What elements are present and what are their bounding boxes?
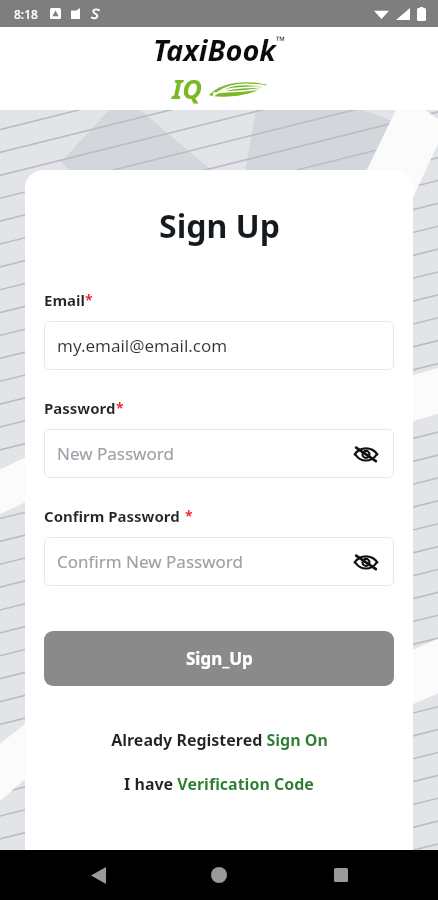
button[interactable]: Home (195, 851, 243, 899)
button[interactable]: Sign_Up (44, 631, 394, 686)
staticText: ™ (276, 32, 286, 48)
staticText: Email (44, 290, 85, 310)
button[interactable]: New Password (44, 429, 394, 478)
button[interactable]: Already Registered Sign On (44, 729, 394, 751)
staticText: I have Verification Code (124, 773, 314, 795)
button[interactable]: Back (74, 851, 122, 899)
button[interactable]: my.email@email.com (44, 321, 394, 370)
staticText: New Password (57, 442, 174, 465)
staticText: Password (44, 398, 116, 418)
staticText: TaxiBook (153, 30, 276, 69)
button[interactable]: Show password (346, 542, 386, 582)
staticText: 8:18 (14, 6, 38, 22)
button[interactable]: I have Verification Code (44, 773, 394, 795)
staticText: Already Registered Sign On (111, 729, 328, 751)
button[interactable]: Recent apps (317, 851, 365, 899)
button[interactable]: Show password (346, 434, 386, 474)
staticText: IQ (172, 70, 203, 107)
staticText: Sign Up (159, 204, 280, 248)
staticText: * (185, 506, 193, 525)
staticText: * (85, 290, 93, 309)
staticText: Confirm New Password (57, 550, 243, 573)
staticText: * (116, 398, 124, 417)
staticText: my.email@email.com (57, 334, 228, 357)
staticText: Confirm Password (44, 506, 180, 526)
staticText: Sign_Up (186, 647, 253, 670)
button[interactable]: Confirm New Password (44, 537, 394, 586)
